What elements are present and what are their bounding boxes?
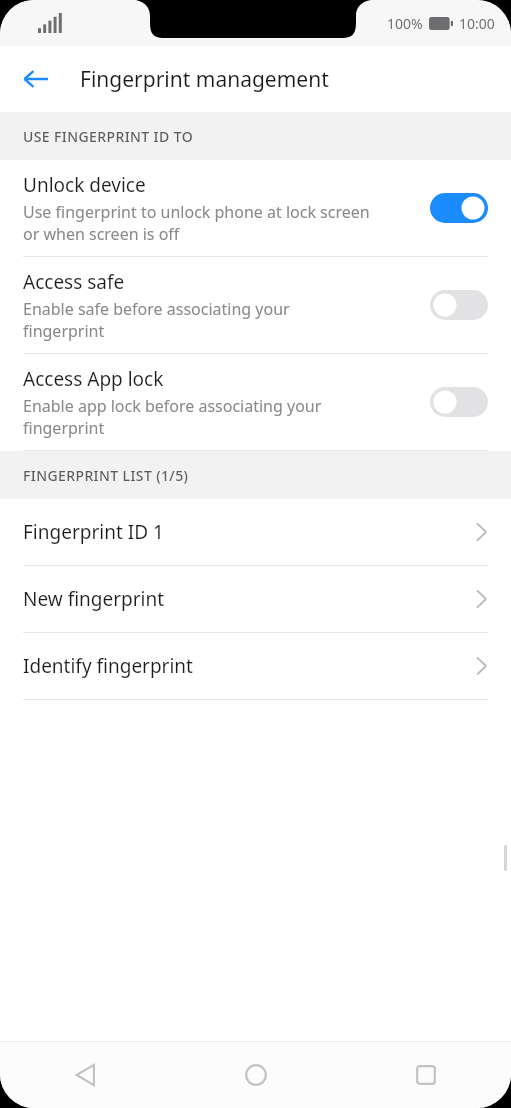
staticText: Fingerprint ID 1 <box>23 519 476 545</box>
button[interactable]: On <box>430 193 488 223</box>
staticText: Unlock device <box>23 172 146 198</box>
button[interactable]: Recent apps <box>341 1042 511 1108</box>
staticText: Enable safe before associating your fing… <box>23 298 290 342</box>
staticText: Identify fingerprint <box>23 653 476 679</box>
staticText: Access safe <box>23 269 125 295</box>
button[interactable]: New fingerprint <box>0 566 511 633</box>
staticText: USE FINGERPRINT ID TO <box>23 127 194 146</box>
staticText: FINGERPRINT LIST (1/5) <box>23 466 189 485</box>
button[interactable]: Home <box>171 1042 341 1108</box>
button[interactable]: Access App lock <box>0 354 511 451</box>
button[interactable]: Unlock device <box>0 160 511 257</box>
button[interactable]: Identify fingerprint <box>0 633 511 700</box>
staticText: New fingerprint <box>23 586 476 612</box>
staticText: Access App lock <box>23 366 164 392</box>
button[interactable]: Fingerprint ID 1 <box>0 499 511 566</box>
button[interactable]: Back <box>0 1042 171 1108</box>
staticText: 100% <box>387 14 423 33</box>
staticText: 10:00 <box>459 14 495 33</box>
button[interactable]: Off <box>430 290 488 320</box>
button[interactable]: Back <box>10 53 62 105</box>
staticText: Use fingerprint to unlock phone at lock … <box>23 201 370 245</box>
button[interactable]: Access safe <box>0 257 511 354</box>
button[interactable]: Off <box>430 387 488 417</box>
staticText: Fingerprint management <box>80 65 329 94</box>
staticText: Enable app lock before associating your … <box>23 395 322 439</box>
